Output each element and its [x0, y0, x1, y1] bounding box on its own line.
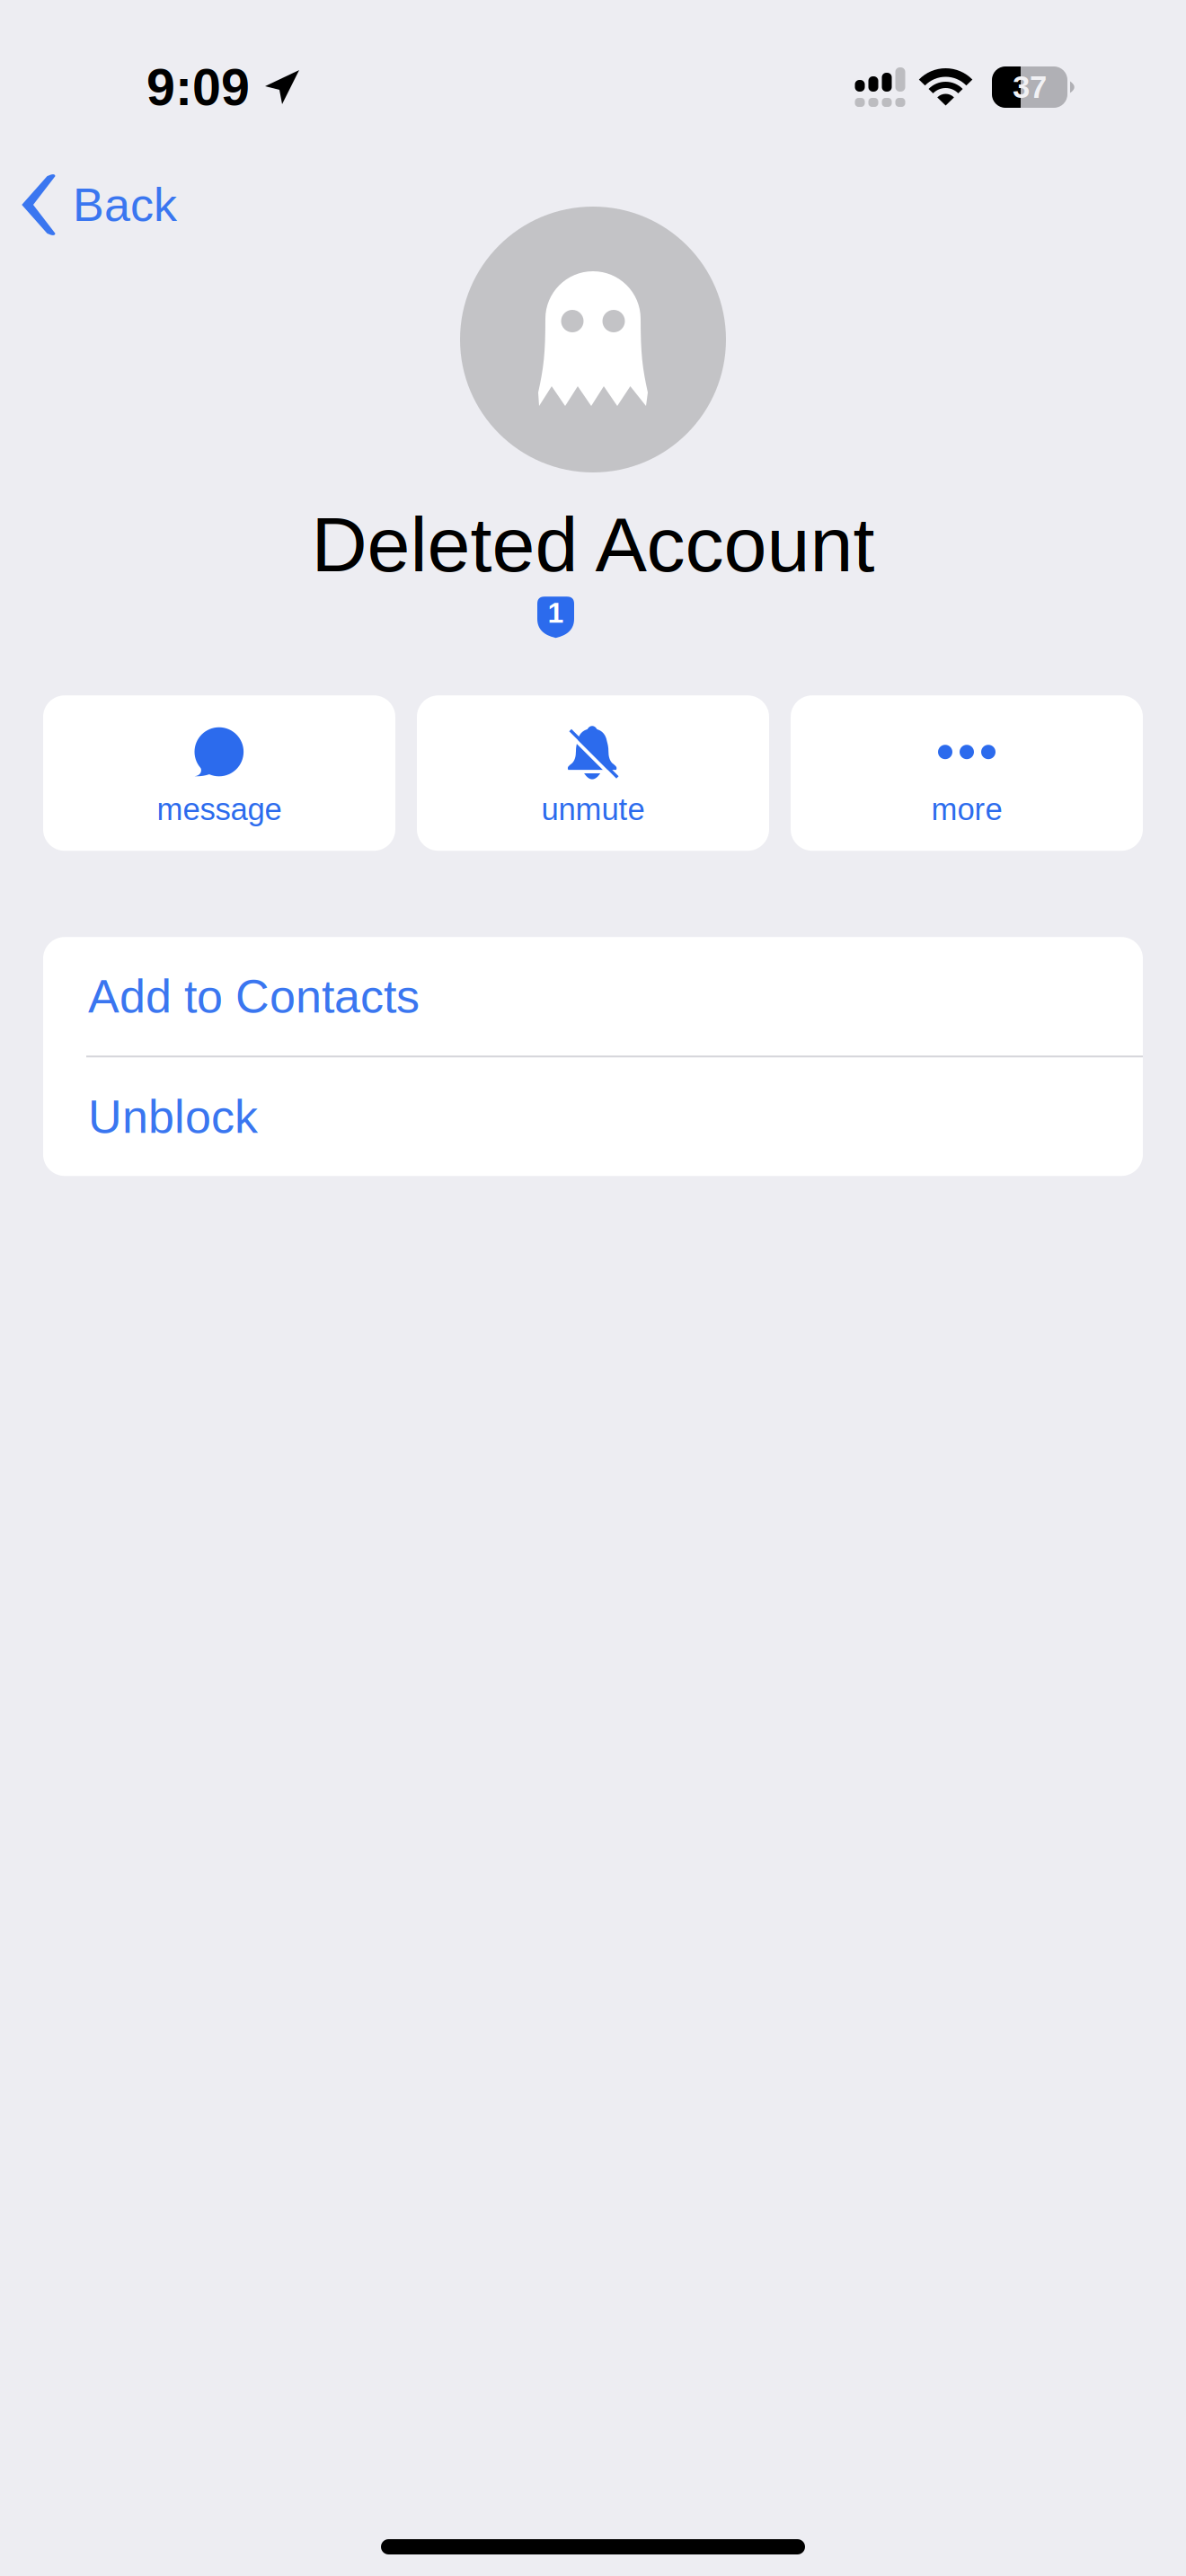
button[interactable]: Add to Contacts — [43, 937, 1143, 1056]
staticText: 9:09 — [146, 58, 250, 116]
staticText: unmute — [541, 792, 645, 827]
button[interactable]: unmute — [417, 695, 769, 851]
button[interactable]: message — [43, 695, 395, 851]
staticText: more — [931, 792, 1002, 827]
staticText: Deleted Account — [311, 501, 875, 588]
staticText: Unblock — [88, 1091, 258, 1143]
button[interactable]: Back — [0, 162, 204, 248]
staticText: message — [157, 792, 282, 827]
staticText: 37 — [1013, 70, 1047, 104]
staticText: Back — [73, 179, 177, 231]
staticText: Add to Contacts — [88, 970, 420, 1022]
button[interactable]: more — [791, 695, 1143, 851]
button[interactable]: Unblock — [43, 1057, 1143, 1176]
staticText: 1 — [548, 597, 564, 629]
